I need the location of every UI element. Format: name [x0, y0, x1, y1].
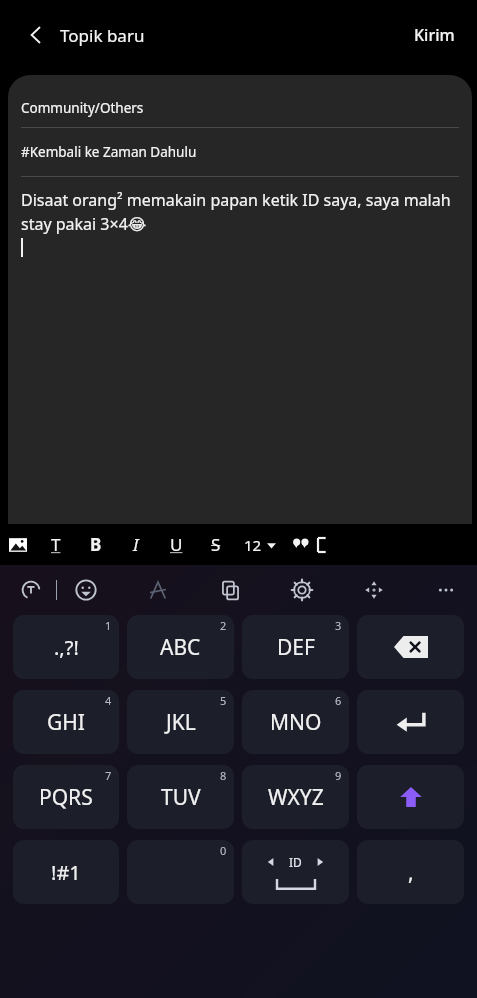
- button[interactable]: Move keyboard: [357, 573, 391, 607]
- staticText: 1: [105, 618, 112, 633]
- staticText: Topik baru: [60, 24, 145, 47]
- button[interactable]: Insert image: [0, 524, 36, 565]
- button[interactable]: TUV: [127, 765, 234, 829]
- button[interactable]: ,: [357, 840, 464, 904]
- staticText: S: [211, 533, 221, 556]
- staticText: 9: [335, 768, 342, 783]
- staticText: #Kembali ke Zaman Dahulu: [21, 143, 197, 161]
- staticText: .,?!: [54, 634, 79, 661]
- staticText: JKL: [166, 708, 196, 737]
- staticText: Kirim: [414, 24, 455, 46]
- staticText: DEF: [277, 633, 315, 662]
- button[interactable]: Font size: [236, 535, 284, 555]
- staticText: B: [90, 533, 102, 556]
- button[interactable]: Disaat orang² memakain papan ketik ID sa…: [8, 177, 472, 257]
- button[interactable]: Kirim: [398, 16, 471, 54]
- button[interactable]: Emoji: [69, 573, 103, 607]
- staticText: 0: [220, 843, 227, 858]
- button[interactable]: Enter: [357, 690, 464, 754]
- button[interactable]: JKL: [127, 690, 234, 754]
- staticText: !#1: [51, 859, 81, 886]
- button[interactable]: .,?!: [13, 615, 119, 679]
- staticText: TUV: [161, 783, 201, 812]
- staticText: 8: [220, 768, 227, 783]
- staticText: 12: [244, 535, 262, 555]
- button[interactable]: Italic: [116, 524, 156, 565]
- button[interactable]: GHI: [13, 690, 119, 754]
- staticText: WXYZ: [268, 783, 324, 812]
- staticText: I: [133, 533, 139, 556]
- button[interactable]: PQRS: [13, 765, 119, 829]
- button[interactable]: 0: [127, 840, 234, 904]
- button[interactable]: Shift: [357, 765, 464, 829]
- button[interactable]: WXYZ: [242, 765, 349, 829]
- button[interactable]: !#1: [13, 840, 119, 904]
- staticText: MNO: [270, 708, 322, 737]
- staticText: 6: [335, 693, 342, 708]
- button[interactable]: Translate: [141, 573, 175, 607]
- staticText: GHI: [47, 708, 85, 737]
- staticText: 2: [220, 618, 227, 633]
- staticText: U: [170, 533, 183, 556]
- button[interactable]: ABC: [127, 615, 234, 679]
- button[interactable]: Text style: [36, 524, 76, 565]
- staticText: 4: [105, 693, 112, 708]
- button[interactable]: Clipboard: [213, 573, 247, 607]
- staticText: ,: [408, 858, 414, 887]
- button[interactable]: Switch input: [14, 573, 48, 607]
- button[interactable]: More formatting: [318, 524, 342, 565]
- button[interactable]: Backspace: [357, 615, 464, 679]
- staticText: ID: [289, 854, 302, 870]
- staticText: Disaat orang² memakain papan ketik ID sa…: [21, 189, 459, 235]
- button[interactable]: Strikethrough: [196, 524, 236, 565]
- button[interactable]: Underline: [156, 524, 196, 565]
- staticText: 3: [335, 618, 342, 633]
- staticText: PQRS: [39, 783, 93, 812]
- staticText: ABC: [160, 633, 201, 662]
- button[interactable]: DEF: [242, 615, 349, 679]
- staticText: 5: [220, 693, 227, 708]
- staticText: 7: [105, 768, 112, 783]
- button[interactable]: Bold: [76, 524, 116, 565]
- button[interactable]: Space, language ID: [242, 840, 349, 904]
- staticText: T: [51, 533, 61, 556]
- button[interactable]: More options: [429, 573, 463, 607]
- button[interactable]: Quote: [284, 524, 318, 565]
- button[interactable]: Community/Others: [8, 97, 472, 127]
- staticText: Community/Others: [21, 99, 144, 117]
- button[interactable]: Back: [18, 17, 54, 53]
- button[interactable]: Settings: [285, 573, 319, 607]
- button[interactable]: MNO: [242, 690, 349, 754]
- button[interactable]: #Kembali ke Zaman Dahulu: [8, 128, 472, 176]
- button[interactable]: Tag: [8, 878, 472, 894]
